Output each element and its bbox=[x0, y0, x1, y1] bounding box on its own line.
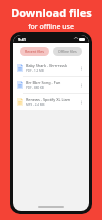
button[interactable]: More options bbox=[78, 65, 85, 72]
button[interactable]: Baby Shark - Brrrrrsssk Karaoke Rhymes w bbox=[13, 60, 89, 76]
staticText: for offline use bbox=[28, 22, 74, 32]
button[interactable]: Recent files bbox=[20, 47, 49, 56]
staticText: Recent files bbox=[25, 49, 44, 54]
staticText: PDF - 880 KB bbox=[26, 86, 44, 90]
staticText: PDF - 1.2 MB bbox=[26, 69, 44, 73]
staticText: Offline files bbox=[58, 49, 77, 54]
staticText: Download files bbox=[11, 5, 92, 20]
staticText: Renews - Spotify XL Liam MP3 5 bbox=[26, 97, 76, 102]
button[interactable]: Renews - Spotify XL Liam MP3 5 bbox=[13, 94, 89, 110]
staticText: MP3 - 2.4 MB bbox=[26, 103, 45, 107]
button[interactable]: More options bbox=[78, 99, 85, 106]
button[interactable]: Brr Bbrr Song - Fun summer Animals Tone … bbox=[13, 77, 89, 93]
button[interactable]: More options bbox=[78, 82, 85, 89]
button[interactable]: Offline files bbox=[53, 47, 82, 56]
staticText: Brr Bbrr Song - Fun summer Animals Tone … bbox=[26, 80, 76, 85]
staticText: Baby Shark - Brrrrrsssk Karaoke Rhymes w bbox=[26, 63, 76, 68]
staticText: 9:41 bbox=[18, 37, 26, 42]
